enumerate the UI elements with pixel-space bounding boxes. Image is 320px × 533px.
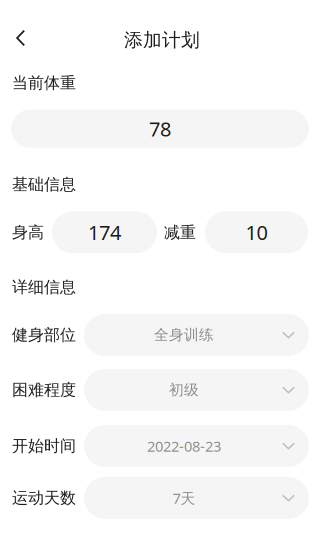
staticText: 添加计划 <box>124 28 200 51</box>
staticText: 174 <box>88 219 121 246</box>
staticText: 困难程度 <box>12 380 76 400</box>
button[interactable]: 78 <box>11 110 309 148</box>
button[interactable]: 健身部位 <box>0 314 320 356</box>
staticText: 当前体重 <box>12 73 76 93</box>
button[interactable]: 困难程度 <box>0 369 320 411</box>
staticText: 减重 <box>164 222 196 242</box>
staticText: 7天 <box>172 488 195 508</box>
staticText: 78 <box>149 115 171 142</box>
staticText: 10 <box>245 219 267 246</box>
staticText: 初级 <box>169 381 199 399</box>
staticText: 详细信息 <box>12 277 76 297</box>
staticText: 健身部位 <box>12 325 76 345</box>
staticText: 2022-08-23 <box>147 436 221 456</box>
button[interactable]: Back <box>0 20 37 59</box>
staticText: 运动天数 <box>12 488 76 508</box>
staticText: 开始时间 <box>12 436 76 456</box>
staticText: 全身训练 <box>154 326 214 344</box>
button[interactable]: 运动天数 <box>0 477 320 519</box>
staticText: 基础信息 <box>12 175 76 194</box>
button[interactable]: 开始时间 <box>0 425 320 467</box>
button[interactable]: 10 <box>205 211 308 253</box>
staticText: 身高 <box>12 222 44 242</box>
button[interactable]: 174 <box>52 211 157 253</box>
